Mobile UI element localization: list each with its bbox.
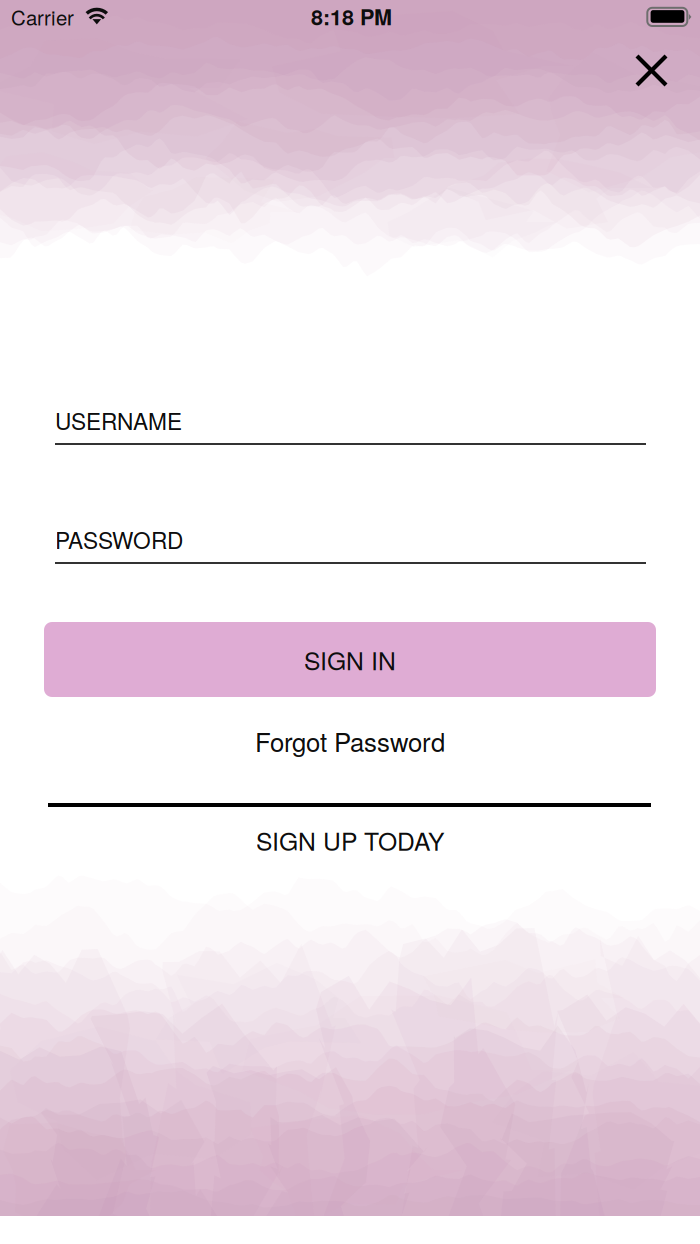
staticText: USERNAME xyxy=(55,404,182,436)
button[interactable]: Forgot Password xyxy=(44,715,656,767)
staticText: 8:18 PM xyxy=(311,1,392,32)
button[interactable]: Close xyxy=(622,41,680,99)
staticText: Forgot Password xyxy=(255,723,445,759)
staticText: SIGN IN xyxy=(304,642,396,677)
staticText: PASSWORD xyxy=(55,523,183,555)
button[interactable]: SIGN UP TODAY xyxy=(44,814,656,866)
staticText: SIGN UP TODAY xyxy=(256,822,444,858)
button[interactable]: SIGN IN xyxy=(44,622,656,697)
staticText: Carrier xyxy=(11,2,74,31)
